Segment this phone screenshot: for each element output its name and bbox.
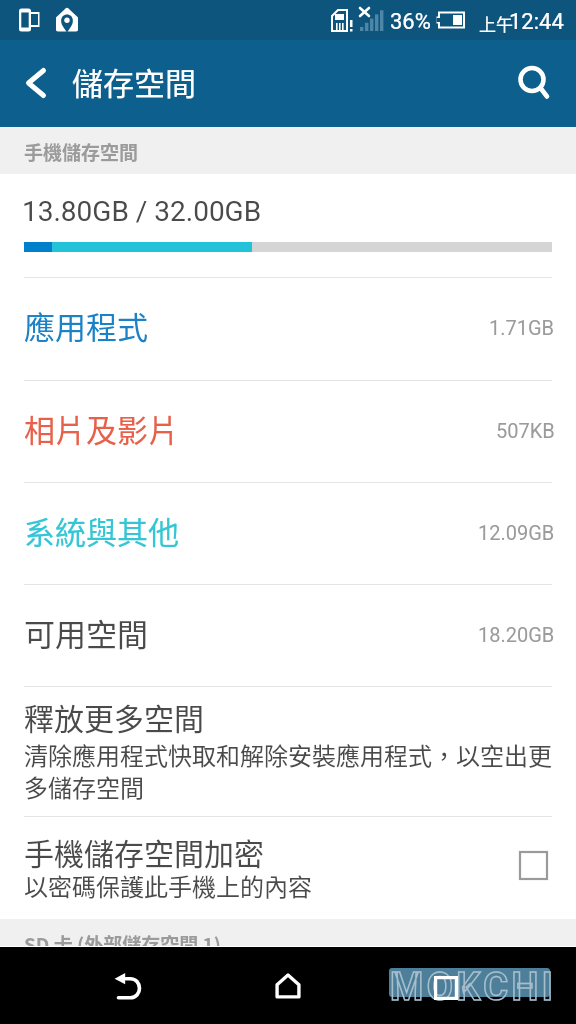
staticText: 手機儲存空間 bbox=[24, 138, 139, 166]
staticText: 可用空間 bbox=[24, 610, 148, 655]
button[interactable]: 系統與其他 bbox=[0, 482, 576, 584]
button[interactable]: Home bbox=[256, 948, 320, 1024]
staticText: 手機儲存空間加密 bbox=[24, 830, 264, 873]
button[interactable]: Recent apps bbox=[414, 950, 478, 1024]
staticText: 以密碼保護此手機上的內容 bbox=[24, 868, 312, 903]
staticText: 13.80GB / 32.00GB bbox=[22, 195, 262, 228]
staticText: 應用程式 bbox=[24, 303, 148, 348]
staticText: 儲存空間 bbox=[72, 59, 196, 104]
staticText: 36% bbox=[390, 9, 431, 35]
button[interactable]: Back bbox=[96, 948, 160, 1024]
button[interactable]: Search bbox=[496, 40, 576, 127]
button[interactable]: 相片及影片 bbox=[0, 380, 576, 482]
staticText: MOKCHI bbox=[390, 965, 557, 1010]
staticText: 清除應用程式快取和解除安裝應用程式，以空出更 多儲存空間 bbox=[24, 737, 552, 804]
staticText: 507KB bbox=[496, 419, 555, 442]
staticText: 相片及影片 bbox=[24, 406, 179, 451]
button[interactable]: 可用空間 bbox=[0, 584, 576, 686]
staticText: 12:44 bbox=[509, 9, 564, 35]
button[interactable]: 手機儲存空間加密 bbox=[0, 816, 576, 919]
staticText: 系統與其他 bbox=[24, 508, 179, 553]
staticText: SD 卡 (外部儲存空間 1) bbox=[24, 930, 221, 957]
button[interactable]: 釋放更多空間 bbox=[0, 686, 576, 816]
staticText: 12.09GB bbox=[478, 521, 555, 544]
staticText: 釋放更多空間 bbox=[24, 695, 204, 738]
button[interactable]: 應用程式 bbox=[0, 277, 576, 380]
staticText: 18.20GB bbox=[478, 623, 555, 646]
staticText: 上午 bbox=[479, 11, 513, 36]
button[interactable]: Encrypt phone storage checkbox bbox=[520, 852, 547, 879]
button[interactable]: Back bbox=[0, 40, 66, 127]
staticText: 1.71GB bbox=[489, 316, 555, 339]
